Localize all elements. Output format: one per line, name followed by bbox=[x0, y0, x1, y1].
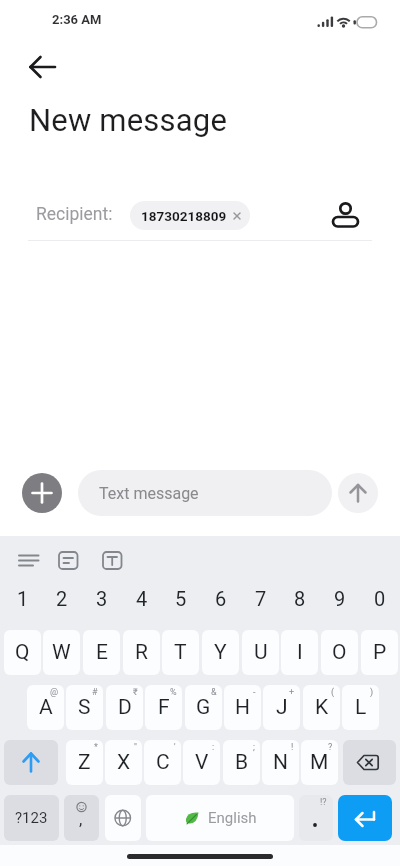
button[interactable]: 6 bbox=[202, 575, 239, 622]
button[interactable]: A bbox=[27, 685, 64, 730]
button[interactable]: !? bbox=[299, 795, 333, 841]
staticText: L bbox=[355, 695, 367, 720]
button[interactable]: S bbox=[66, 685, 103, 730]
staticText: : bbox=[212, 742, 215, 753]
button[interactable]: ?123 bbox=[4, 795, 59, 841]
staticText: O bbox=[332, 640, 347, 665]
button[interactable]: I bbox=[281, 630, 318, 675]
staticText: C bbox=[156, 750, 170, 775]
staticText: 0 bbox=[374, 587, 386, 610]
staticText: R bbox=[135, 640, 148, 665]
staticText: Q bbox=[15, 640, 30, 665]
button[interactable]: Y bbox=[202, 630, 239, 675]
button[interactable]: 8 bbox=[281, 575, 318, 622]
button[interactable]: T bbox=[162, 630, 199, 675]
button[interactable]: 3 bbox=[83, 575, 120, 622]
button[interactable] bbox=[4, 740, 58, 785]
button[interactable] bbox=[325, 192, 367, 234]
button[interactable]: 5 bbox=[162, 575, 199, 622]
staticText: 9 bbox=[334, 587, 346, 610]
staticText: 2:36 AM bbox=[52, 12, 102, 27]
staticText: ( bbox=[331, 687, 335, 698]
staticText: 2 bbox=[56, 587, 68, 610]
staticText: J bbox=[276, 695, 288, 720]
staticText: U bbox=[254, 640, 268, 665]
button[interactable]: Text message bbox=[78, 470, 332, 516]
staticText: X bbox=[117, 750, 131, 775]
staticText: H bbox=[235, 695, 250, 720]
button[interactable]: L bbox=[342, 685, 379, 730]
button[interactable]: E bbox=[83, 630, 120, 675]
staticText: ; bbox=[253, 742, 255, 753]
button[interactable]: 7 bbox=[242, 575, 279, 622]
staticText: % bbox=[170, 687, 177, 698]
button[interactable] bbox=[338, 795, 392, 841]
button[interactable]: 1 bbox=[4, 575, 41, 622]
button[interactable] bbox=[22, 473, 62, 513]
button[interactable]: C bbox=[144, 740, 181, 785]
button[interactable]: V bbox=[183, 740, 220, 785]
staticText: , bbox=[79, 809, 83, 829]
button[interactable]: X bbox=[105, 740, 142, 785]
staticText: M bbox=[310, 750, 329, 775]
button[interactable]: U bbox=[242, 630, 279, 675]
staticText: * bbox=[94, 742, 98, 753]
staticText: ₹ bbox=[133, 687, 138, 698]
staticText: 6 bbox=[215, 587, 227, 610]
button[interactable]: N bbox=[262, 740, 299, 785]
staticText: 7 bbox=[255, 587, 267, 610]
button[interactable]: , bbox=[64, 795, 99, 841]
button[interactable]: English bbox=[146, 795, 294, 841]
staticText: 1 bbox=[17, 587, 29, 610]
button[interactable] bbox=[94, 542, 130, 574]
button[interactable]: Z bbox=[66, 740, 103, 785]
button[interactable] bbox=[343, 740, 396, 785]
button[interactable] bbox=[338, 473, 378, 513]
staticText: K bbox=[315, 695, 329, 720]
button[interactable]: H bbox=[224, 685, 261, 730]
staticText: Text message bbox=[99, 484, 199, 503]
staticText: D bbox=[118, 695, 132, 720]
button[interactable]: G bbox=[185, 685, 222, 730]
staticText: ! bbox=[291, 742, 294, 753]
staticText: B bbox=[235, 750, 249, 775]
button[interactable]: Q bbox=[4, 630, 41, 675]
button[interactable]: M bbox=[301, 740, 338, 785]
button[interactable]: B bbox=[223, 740, 260, 785]
staticText: Z bbox=[78, 750, 91, 775]
staticText: + bbox=[289, 687, 295, 698]
button[interactable]: 2 bbox=[43, 575, 80, 622]
staticText: ) bbox=[370, 687, 374, 698]
staticText: G bbox=[196, 695, 211, 720]
staticText: ?123 bbox=[15, 809, 48, 827]
staticText: & bbox=[211, 687, 217, 698]
staticText: ? bbox=[328, 742, 333, 753]
staticText: 18730218809 bbox=[141, 208, 227, 224]
staticText: # bbox=[92, 687, 98, 698]
button[interactable]: 4 bbox=[123, 575, 160, 622]
staticText: T bbox=[174, 640, 187, 665]
button[interactable] bbox=[105, 795, 141, 841]
staticText: W bbox=[52, 640, 71, 665]
button[interactable] bbox=[50, 542, 86, 574]
button[interactable]: P bbox=[361, 630, 398, 675]
staticText: Y bbox=[214, 640, 227, 665]
staticText: I bbox=[297, 640, 303, 665]
staticText: !? bbox=[320, 797, 327, 808]
button[interactable] bbox=[20, 48, 64, 86]
button[interactable]: J bbox=[263, 685, 300, 730]
button[interactable]: W bbox=[43, 630, 80, 675]
button[interactable]: D bbox=[106, 685, 143, 730]
button[interactable]: 9 bbox=[321, 575, 358, 622]
button[interactable]: R bbox=[123, 630, 160, 675]
staticText: 5 bbox=[175, 587, 187, 610]
staticText: ' bbox=[174, 742, 176, 753]
staticText: New message bbox=[29, 102, 228, 138]
button[interactable]: K bbox=[303, 685, 340, 730]
button[interactable]: O bbox=[321, 630, 358, 675]
button[interactable]: 18730218809 bbox=[130, 201, 250, 230]
button[interactable]: 0 bbox=[361, 575, 398, 622]
button[interactable] bbox=[10, 542, 46, 574]
staticText: N bbox=[273, 750, 288, 775]
button[interactable]: F bbox=[145, 685, 182, 730]
